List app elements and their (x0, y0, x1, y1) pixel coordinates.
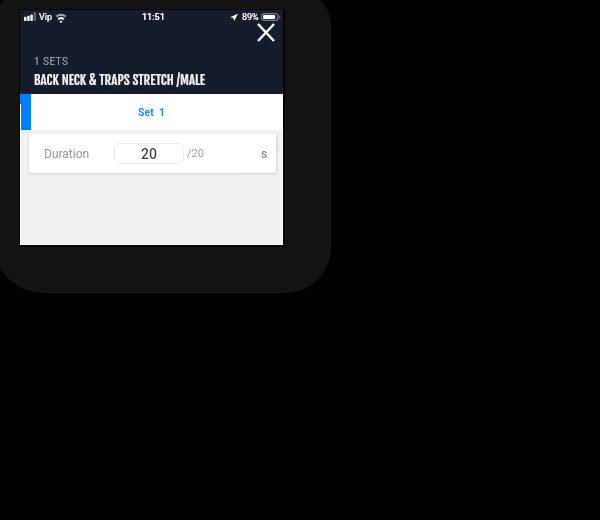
staticText: 20 (141, 146, 157, 162)
staticText: Vip (39, 12, 52, 23)
staticText: 11:51 (142, 12, 165, 23)
staticText: s (261, 147, 268, 161)
staticText: 1 SETS (34, 56, 69, 68)
staticText: 89% (242, 12, 259, 23)
button[interactable]: Set 1 (31, 94, 272, 130)
staticText: Set 1 (138, 106, 165, 118)
staticText: BACK NECK & TRAPS STRETCH /MALE (34, 72, 205, 88)
staticText: /20 (187, 147, 204, 160)
button[interactable]: Close (253, 20, 280, 47)
button[interactable]: Duration (29, 134, 276, 173)
staticText: Duration (44, 147, 90, 161)
button[interactable]: 20 (114, 143, 184, 164)
